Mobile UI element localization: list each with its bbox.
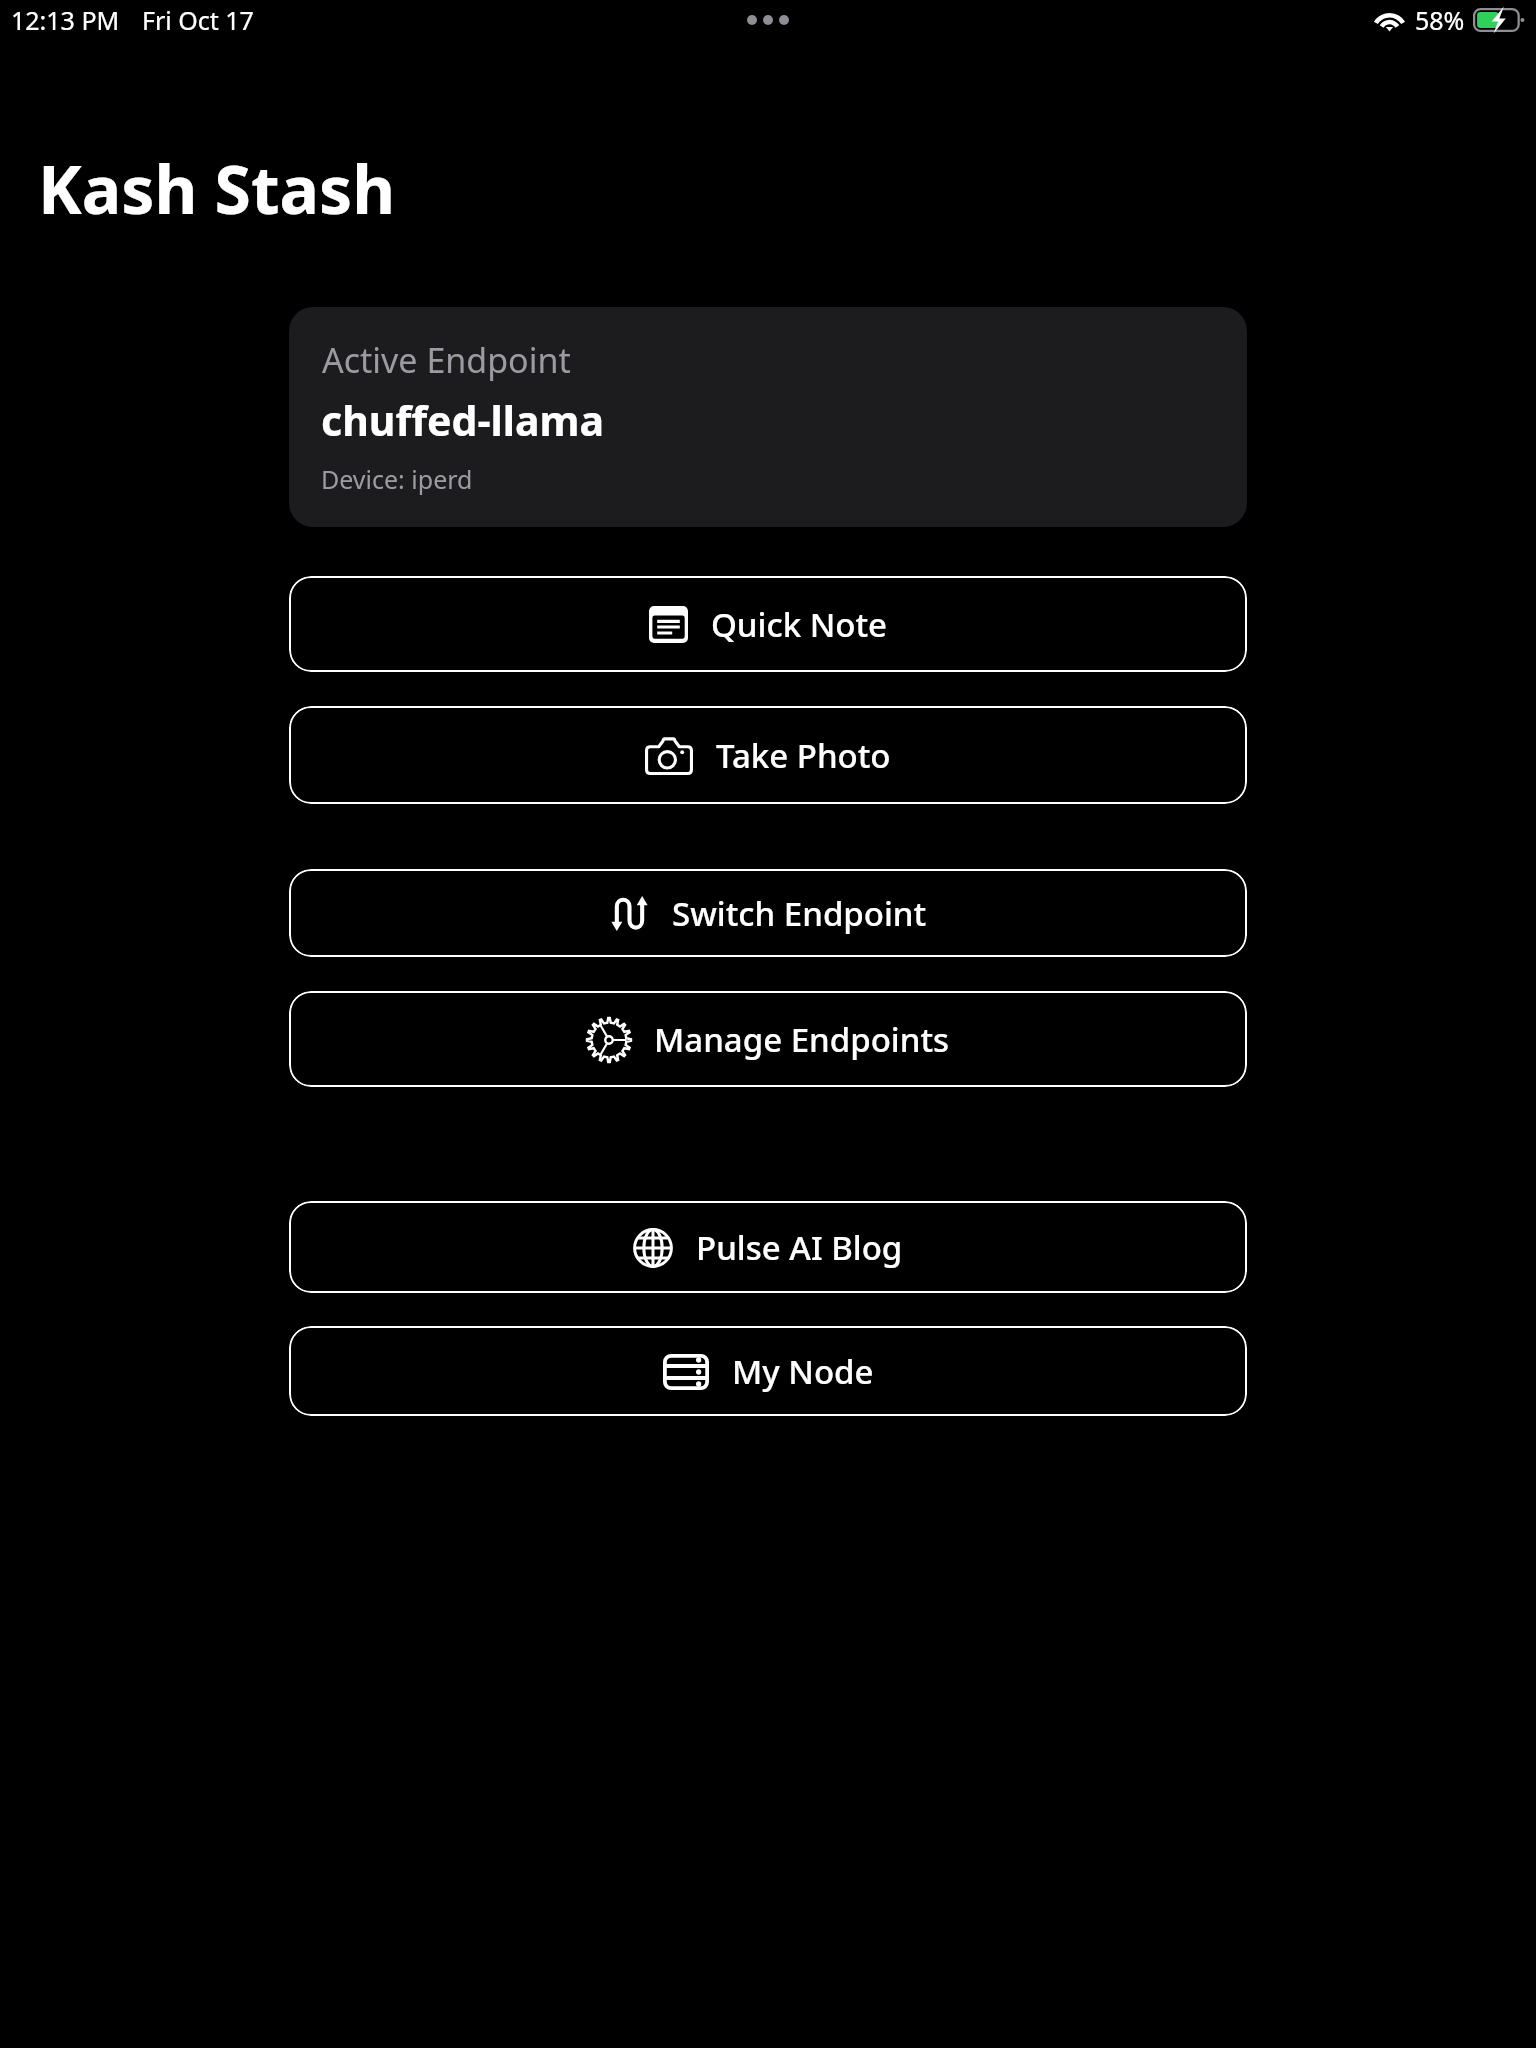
staticText: My Node bbox=[732, 1349, 874, 1394]
staticText: Switch Endpoint bbox=[672, 891, 927, 936]
staticText: 12:13 PM bbox=[11, 3, 120, 37]
staticText: Pulse AI Blog bbox=[696, 1225, 903, 1270]
staticText: Quick Note bbox=[711, 602, 888, 647]
button[interactable]: Switch Endpoint bbox=[289, 869, 1247, 957]
button[interactable]: My Node bbox=[289, 1326, 1247, 1416]
button[interactable]: Active Endpoint bbox=[289, 307, 1247, 527]
other: Wi-Fi bbox=[1375, 10, 1404, 31]
button[interactable]: Take Photo bbox=[289, 706, 1247, 804]
staticText: 58% bbox=[1415, 3, 1465, 37]
staticText: Fri Oct 17 bbox=[142, 3, 254, 37]
button[interactable]: Quick Note bbox=[289, 576, 1247, 672]
staticText: Take Photo bbox=[716, 733, 891, 778]
other: Battery 58 percent charging bbox=[1473, 8, 1525, 32]
button[interactable]: Manage Endpoints bbox=[289, 991, 1247, 1087]
staticText: Active Endpoint bbox=[322, 337, 571, 383]
staticText: Device: iperd bbox=[321, 462, 473, 496]
button[interactable]: Pulse AI Blog bbox=[289, 1201, 1247, 1293]
staticText: Manage Endpoints bbox=[654, 1017, 950, 1062]
staticText: Kash Stash bbox=[38, 143, 396, 233]
staticText: chuffed-llama bbox=[321, 392, 605, 448]
